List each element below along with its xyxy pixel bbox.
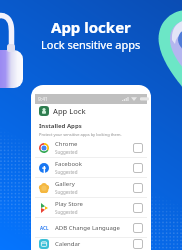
button[interactable]: Play Store bbox=[35, 198, 147, 217]
staticText: App locker bbox=[51, 17, 131, 37]
staticText: Facebook bbox=[55, 160, 82, 168]
staticText: 9:41 bbox=[38, 96, 48, 103]
staticText: Suggested bbox=[55, 149, 78, 155]
staticText: Chrome bbox=[55, 140, 78, 148]
staticText: Suggested bbox=[55, 169, 78, 175]
staticText: Installed Apps bbox=[39, 122, 82, 130]
staticText: Calendar bbox=[55, 240, 81, 248]
staticText: App Lock bbox=[53, 106, 86, 116]
staticText: Lock sensitive apps bbox=[41, 37, 141, 52]
staticText: Suggested bbox=[55, 189, 78, 195]
button[interactable]: Chrome bbox=[35, 138, 147, 157]
staticText: ADB Change Language bbox=[55, 224, 120, 232]
staticText: Gallery bbox=[55, 180, 75, 188]
staticText: Play Store bbox=[55, 200, 83, 208]
button[interactable]: Gallery bbox=[35, 178, 147, 197]
button[interactable]: Calendar bbox=[35, 238, 147, 250]
button[interactable]: ACL bbox=[35, 218, 147, 237]
staticText: Suggested bbox=[55, 209, 78, 215]
staticText: ACL bbox=[40, 225, 49, 231]
button[interactable]: Facebook bbox=[35, 158, 147, 177]
staticText: Protect your sensitive apps by locking t… bbox=[39, 132, 122, 137]
